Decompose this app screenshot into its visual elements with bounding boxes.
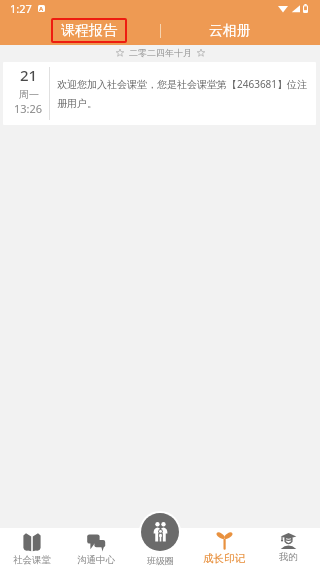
staticText: 班级圈 <box>147 555 174 566</box>
button[interactable]: 班级圈 <box>128 511 192 569</box>
staticText: 成长印记 <box>203 552 245 565</box>
staticText: 社会课堂 <box>13 554 51 566</box>
staticText: 沟通中心 <box>77 554 115 566</box>
staticText: 云相册 <box>209 22 251 40</box>
button[interactable]: 21 <box>3 62 316 125</box>
staticText: 21 <box>20 65 38 85</box>
staticText: 欢迎您加入社会课堂，您是社会课堂第【2463681】位注册用户。 <box>57 77 313 110</box>
staticText: 我的 <box>279 551 298 563</box>
staticText: 13:26 <box>14 101 43 116</box>
button[interactable]: 我的 <box>256 528 320 569</box>
staticText: A <box>39 5 44 12</box>
button[interactable]: 沟通中心 <box>64 528 128 569</box>
staticText: 课程报告 <box>61 22 117 40</box>
button[interactable]: 课程报告 <box>23 16 160 45</box>
button[interactable]: 社会课堂 <box>0 528 64 569</box>
button[interactable]: 云相册 <box>161 16 298 45</box>
button[interactable]: 成长印记 <box>192 528 256 569</box>
staticText: 二零二四年十月 <box>129 47 192 58</box>
staticText: 1:27 <box>10 1 32 16</box>
staticText: 周一 <box>19 88 39 101</box>
